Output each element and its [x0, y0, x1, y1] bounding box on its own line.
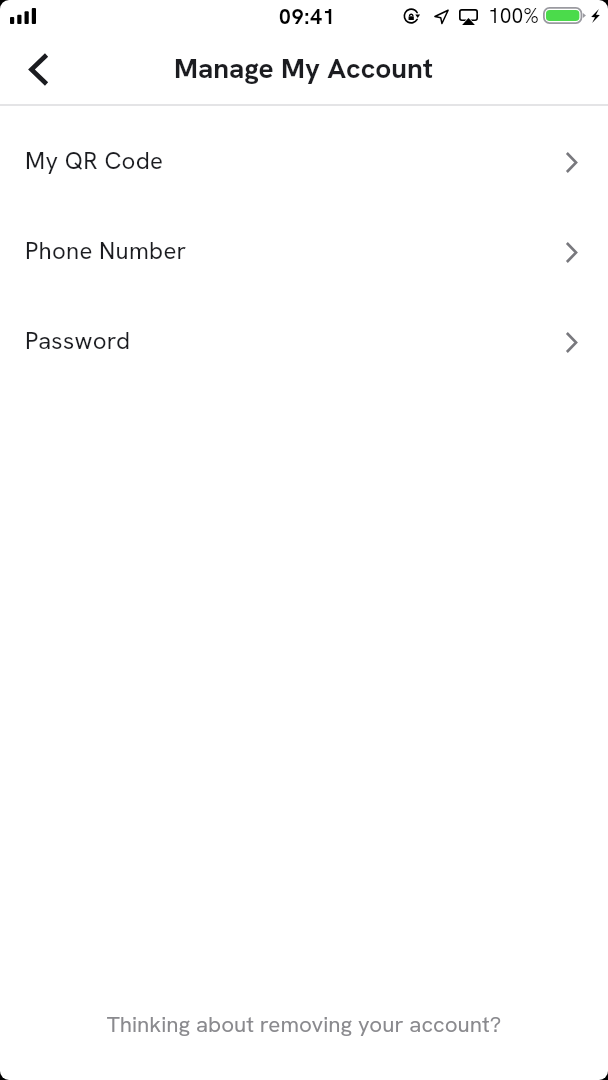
button[interactable]: Thinking about removing your account? — [0, 1010, 608, 1080]
staticText: Password — [25, 325, 131, 356]
button[interactable]: Back — [11, 41, 67, 97]
staticText: My QR Code — [25, 145, 164, 176]
staticText: 09:41 — [279, 3, 336, 30]
button[interactable]: Phone Number — [0, 205, 608, 295]
button[interactable]: Password — [0, 295, 608, 385]
staticText: Manage My Account — [174, 50, 434, 86]
staticText: Phone Number — [25, 235, 187, 266]
staticText: 100% — [488, 2, 539, 29]
button[interactable]: My QR Code — [0, 115, 608, 205]
